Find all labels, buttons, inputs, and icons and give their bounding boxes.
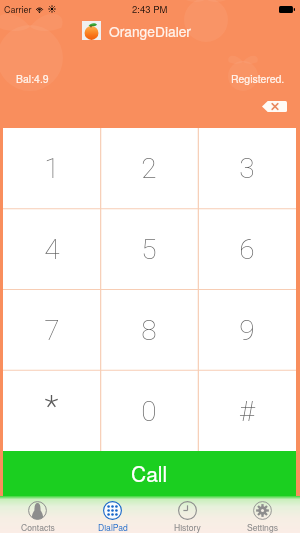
- button[interactable]: [3, 371, 100, 451]
- staticText: 3: [239, 152, 255, 185]
- staticText: 8: [141, 314, 157, 347]
- staticText: 5: [141, 233, 157, 266]
- button[interactable]: #: [198, 371, 296, 451]
- button[interactable]: Backspace: [262, 101, 287, 112]
- button[interactable]: Settings: [225, 496, 300, 533]
- staticText: Contacts: [21, 521, 55, 533]
- staticText: OrangeDialer: [109, 21, 191, 41]
- staticText: DialPad: [98, 521, 128, 533]
- staticText: Bal:4.9: [16, 71, 49, 86]
- button[interactable]: History: [150, 496, 225, 533]
- button[interactable]: DialPad: [75, 496, 150, 533]
- staticText: 6: [239, 233, 255, 266]
- staticText: 9: [239, 314, 255, 347]
- staticText: 4: [44, 233, 60, 266]
- button[interactable]: 5: [100, 209, 198, 289]
- button[interactable]: Contacts: [0, 496, 75, 533]
- staticText: 1: [44, 152, 60, 185]
- staticText: Call: [131, 458, 168, 488]
- button[interactable]: 9: [198, 290, 296, 370]
- button[interactable]: 0: [100, 371, 198, 451]
- button[interactable]: 2: [100, 128, 198, 208]
- button[interactable]: 1: [3, 128, 100, 208]
- staticText: #: [239, 395, 255, 428]
- button[interactable]: 4: [3, 209, 100, 289]
- button[interactable]: Call: [3, 451, 296, 496]
- staticText: 2: [141, 152, 157, 185]
- staticText: 7: [44, 314, 60, 347]
- staticText: 0: [141, 395, 157, 428]
- staticText: 2:43 PM: [132, 2, 168, 16]
- staticText: Settings: [247, 521, 278, 533]
- staticText: Carrier: [4, 3, 32, 16]
- button[interactable]: 6: [198, 209, 296, 289]
- button[interactable]: 3: [198, 128, 296, 208]
- staticText: History: [174, 521, 201, 533]
- staticText: Registered.: [231, 71, 285, 86]
- button[interactable]: 8: [100, 290, 198, 370]
- button[interactable]: 7: [3, 290, 100, 370]
